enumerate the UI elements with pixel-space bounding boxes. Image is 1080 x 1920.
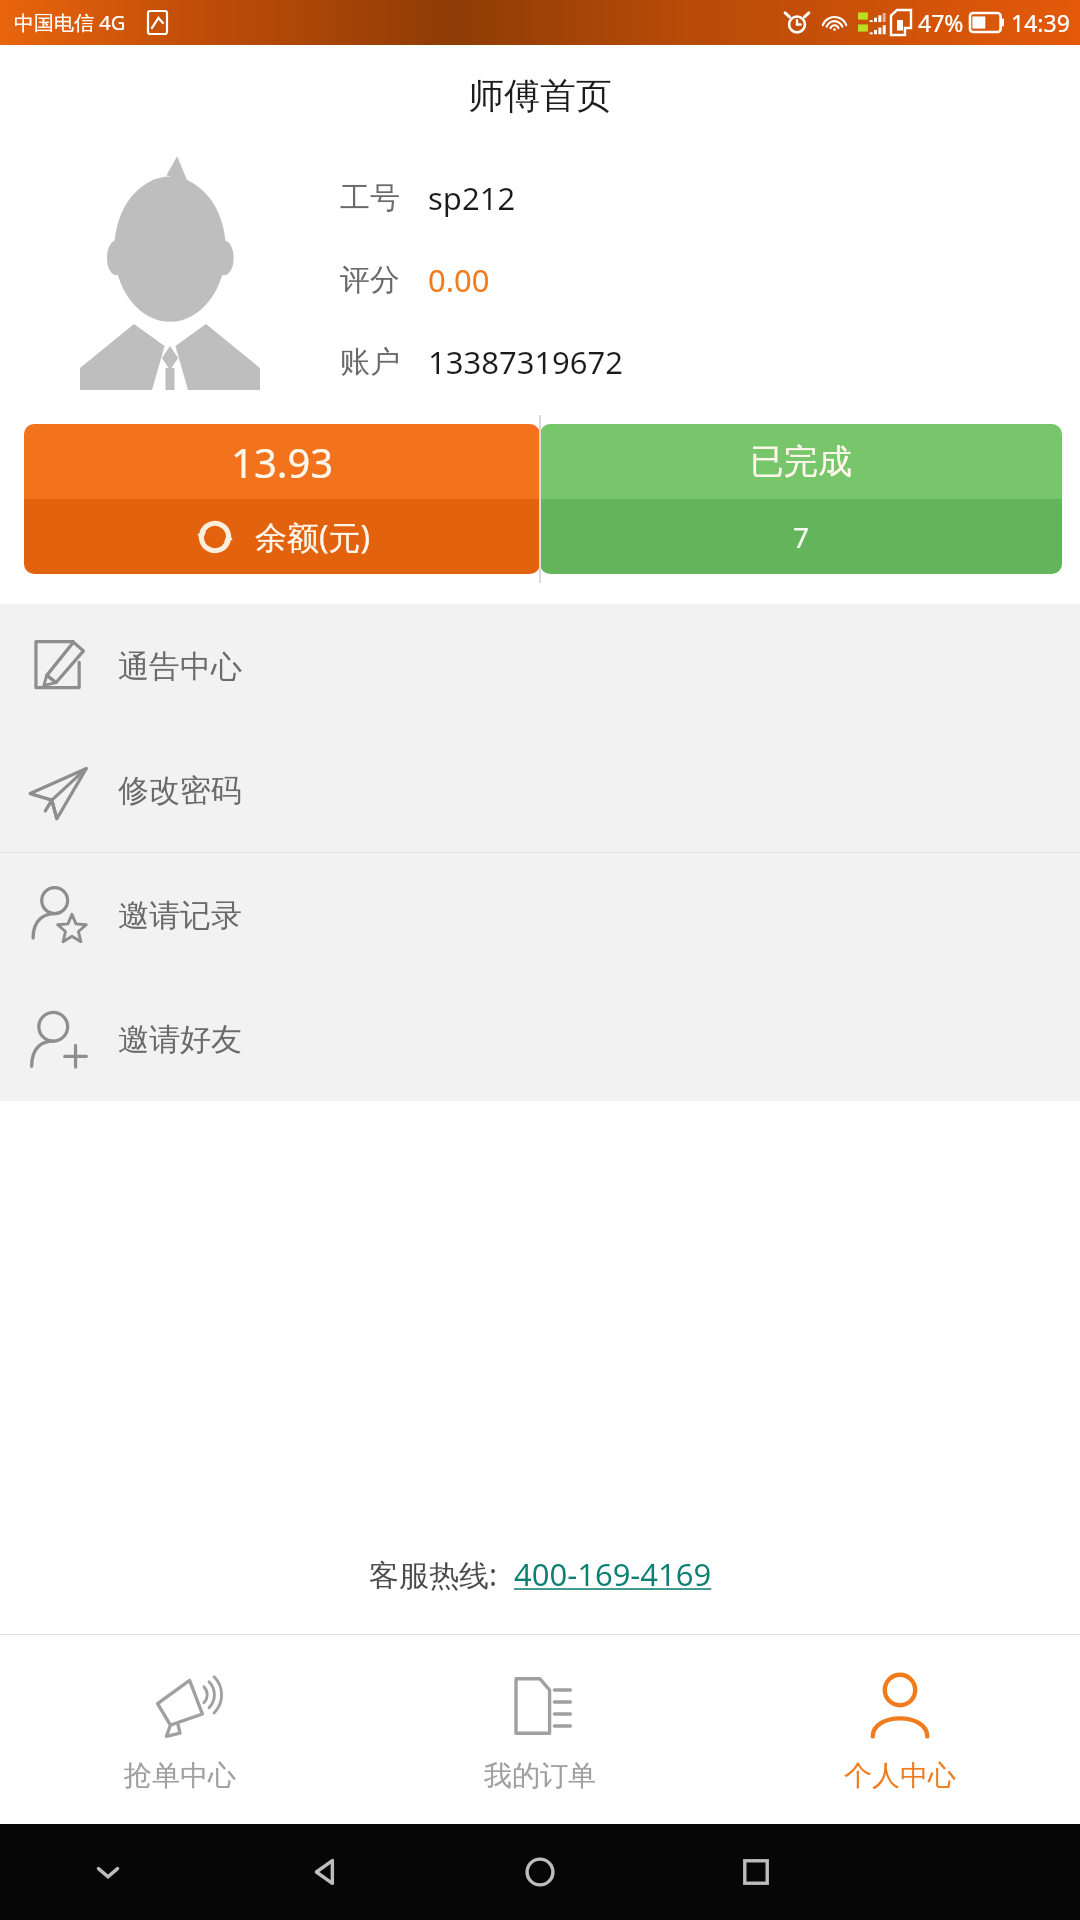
staticText: 客服热线: <box>369 1554 498 1595</box>
staticText: 个人中心 <box>844 1758 956 1793</box>
staticText: 47% <box>918 7 964 38</box>
button[interactable]: 13.93 <box>24 424 540 574</box>
staticText: 14:39 <box>1011 7 1070 38</box>
staticText: 邀请记录 <box>118 896 242 935</box>
staticText: 13387319672 <box>428 341 624 383</box>
other: Recents <box>739 1855 773 1889</box>
button[interactable]: 我的订单 <box>360 1634 720 1824</box>
staticText: 邀请好友 <box>118 1020 242 1059</box>
staticText: 已完成 <box>750 440 852 483</box>
staticText: 通告中心 <box>118 647 242 686</box>
staticText: 工号 <box>340 179 400 217</box>
staticText: 修改密码 <box>118 771 242 810</box>
staticText: 我的订单 <box>484 1758 596 1793</box>
staticText: sp212 <box>428 177 516 219</box>
other: Hide <box>91 1855 125 1889</box>
other: Home <box>521 1853 559 1891</box>
staticText: 评分 <box>340 261 400 299</box>
staticText: 账户 <box>340 343 400 381</box>
other: Back <box>305 1853 343 1891</box>
button[interactable]: 个人中心 <box>720 1634 1080 1824</box>
staticText: 400-169-4169 <box>514 1553 712 1595</box>
staticText: 师傅首页 <box>468 73 612 118</box>
staticText: 7 <box>793 518 810 556</box>
button[interactable]: 400-169-4169 <box>514 1553 712 1595</box>
button[interactable]: 通告中心 <box>0 604 1080 728</box>
staticText: 中国电信 4G <box>14 9 126 36</box>
staticText: 抢单中心 <box>124 1758 236 1793</box>
staticText: 0.00 <box>428 259 490 301</box>
button[interactable]: 修改密码 <box>0 728 1080 852</box>
button[interactable]: 已完成 <box>540 424 1062 574</box>
staticText: 余额(元) <box>255 515 371 559</box>
button[interactable]: 抢单中心 <box>0 1634 360 1824</box>
staticText: 13.93 <box>231 435 334 489</box>
button[interactable]: 邀请记录 <box>0 853 1080 977</box>
button[interactable]: 邀请好友 <box>0 977 1080 1101</box>
